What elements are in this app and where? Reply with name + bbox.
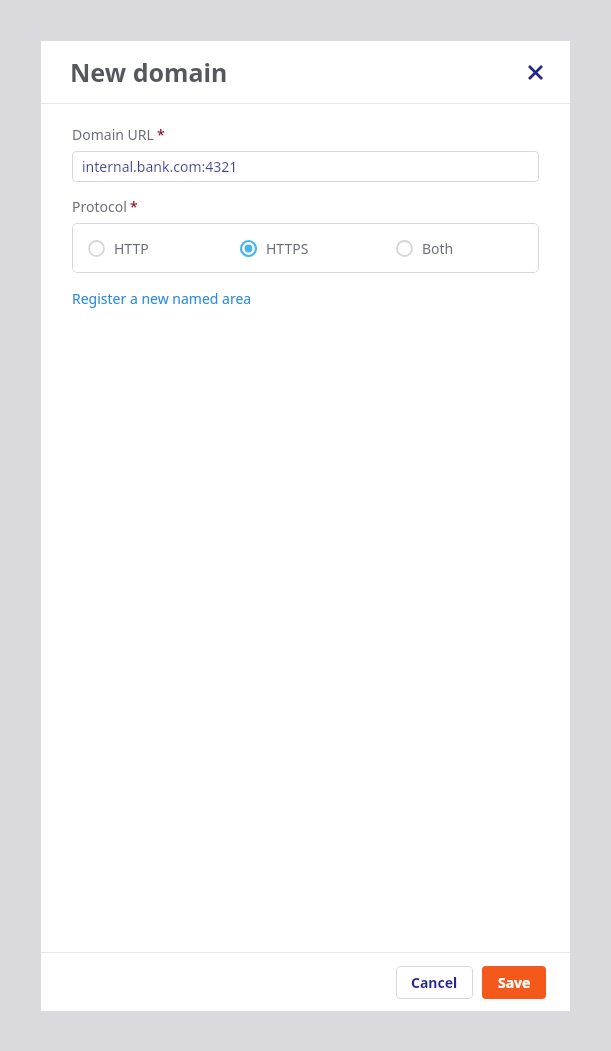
staticText: Protocol: [72, 197, 127, 216]
staticText: internal.bank.com:4321: [82, 157, 238, 176]
staticText: HTTP: [114, 239, 149, 258]
button[interactable]: Both: [396, 231, 516, 265]
button[interactable]: Cancel: [396, 966, 473, 999]
staticText: Domain URL: [72, 125, 154, 144]
staticText: *: [157, 125, 165, 144]
staticText: Register a new named area: [72, 289, 252, 308]
button[interactable]: internal.bank.com:4321: [72, 151, 539, 182]
button[interactable]: HTTP: [88, 231, 240, 265]
staticText: *: [130, 197, 138, 216]
staticText: Cancel: [411, 973, 458, 992]
button[interactable]: HTTPS: [240, 231, 396, 265]
staticText: HTTPS: [266, 239, 309, 258]
staticText: Both: [422, 239, 454, 258]
button[interactable]: Register a new named area: [72, 289, 252, 308]
button[interactable]: Close: [517, 54, 553, 90]
staticText: New domain: [70, 55, 228, 89]
button[interactable]: Save: [482, 966, 546, 999]
staticText: Save: [498, 973, 531, 992]
